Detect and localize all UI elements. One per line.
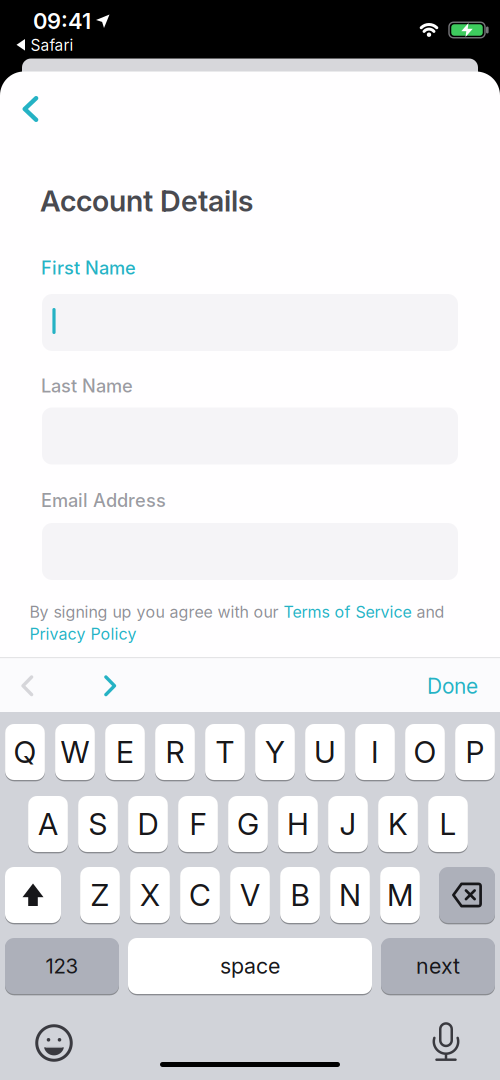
staticText: Email Address: [41, 489, 166, 511]
button[interactable]: Shift: [5, 866, 61, 924]
button[interactable]: Y: [255, 723, 295, 781]
button[interactable]: L: [428, 795, 468, 853]
button[interactable]: M: [380, 866, 420, 924]
staticText: A: [38, 806, 58, 842]
staticText: B: [290, 877, 309, 913]
staticText: and: [411, 602, 444, 622]
button[interactable]: F: [178, 795, 218, 853]
button[interactable]: N: [330, 866, 370, 924]
button[interactable]: Previous field: [21, 675, 34, 697]
button[interactable]: E: [105, 723, 145, 781]
button[interactable]: 123: [5, 937, 119, 995]
button[interactable]: D: [128, 795, 168, 853]
button[interactable]: C: [180, 866, 220, 924]
button[interactable]: G: [228, 795, 268, 853]
staticText: D: [137, 806, 158, 842]
button[interactable]: space: [128, 937, 372, 995]
staticText: Account Details: [40, 183, 253, 219]
staticText: I: [371, 734, 379, 770]
staticText: P: [465, 734, 484, 770]
staticText: next: [416, 953, 460, 979]
button[interactable]: K: [378, 795, 418, 853]
staticText: L: [439, 806, 456, 842]
staticText: Q: [13, 734, 36, 770]
button[interactable]: H: [278, 795, 318, 853]
staticText: Z: [90, 877, 109, 913]
button[interactable]: P: [455, 723, 495, 781]
button[interactable]: R: [155, 723, 195, 781]
staticText: U: [314, 734, 336, 770]
button[interactable]: S: [78, 795, 118, 853]
staticText: F: [189, 806, 206, 842]
button[interactable]: Delete: [439, 866, 495, 924]
button[interactable]: B: [280, 866, 320, 924]
staticText: G: [237, 806, 259, 842]
staticText: 123: [45, 954, 78, 978]
button[interactable]: next: [381, 937, 495, 995]
button[interactable]: X: [130, 866, 170, 924]
staticText: R: [165, 734, 184, 770]
staticText: Safari: [30, 36, 73, 54]
staticText: S: [88, 806, 107, 842]
button[interactable]: First Name: [42, 294, 458, 351]
button[interactable]: Back: [22, 96, 38, 122]
staticText: K: [388, 806, 408, 842]
staticText: H: [287, 806, 309, 842]
staticText: First Name: [41, 257, 136, 279]
button[interactable]: A: [28, 795, 68, 853]
staticText: Y: [265, 734, 285, 770]
staticText: W: [60, 734, 89, 770]
button[interactable]: I: [355, 723, 395, 781]
staticText: T: [215, 734, 234, 770]
button[interactable]: J: [328, 795, 368, 853]
staticText: N: [339, 877, 361, 913]
button[interactable]: Terms of Service: [283, 602, 411, 622]
staticText: space: [220, 953, 280, 979]
button[interactable]: Next field: [103, 675, 116, 697]
staticText: V: [240, 877, 260, 913]
button[interactable]: Q: [5, 723, 45, 781]
staticText: By signing up you agree with our: [29, 602, 283, 622]
button[interactable]: T: [205, 723, 245, 781]
staticText: X: [140, 877, 160, 913]
button[interactable]: O: [405, 723, 445, 781]
staticText: M: [387, 877, 413, 913]
staticText: C: [189, 877, 211, 913]
staticText: 09:41: [33, 8, 91, 34]
button[interactable]: U: [305, 723, 345, 781]
staticText: Done: [427, 673, 478, 699]
staticText: E: [116, 734, 134, 770]
staticText: Terms of Service: [283, 602, 411, 622]
button[interactable]: W: [55, 723, 95, 781]
button[interactable]: V: [230, 866, 270, 924]
staticText: Last Name: [41, 375, 133, 397]
button[interactable]: Emoji: [34, 1021, 74, 1065]
staticText: J: [339, 806, 356, 842]
staticText: Privacy Policy: [29, 624, 136, 644]
button[interactable]: Z: [80, 866, 120, 924]
button[interactable]: Privacy Policy: [29, 624, 136, 644]
button[interactable]: Done: [427, 673, 478, 699]
staticText: O: [413, 734, 436, 770]
button[interactable]: Dictate: [426, 1020, 466, 1064]
